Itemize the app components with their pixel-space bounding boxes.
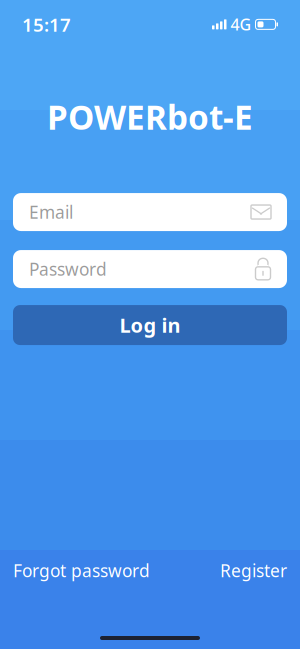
button[interactable]: Register <box>220 553 287 588</box>
button[interactable]: Password <box>13 250 287 288</box>
staticText: Register <box>220 559 287 582</box>
staticText: Email <box>29 200 73 223</box>
staticText: POWERbot-E <box>47 95 253 139</box>
staticText: 15:17 <box>22 12 71 37</box>
staticText: 4G <box>230 14 251 35</box>
button[interactable]: Log in <box>13 305 287 345</box>
button[interactable]: Forgot password <box>13 553 150 588</box>
button[interactable]: Email <box>13 193 287 231</box>
staticText: Password <box>29 257 107 280</box>
staticText: Log in <box>119 312 180 338</box>
staticText: Forgot password <box>13 559 150 582</box>
